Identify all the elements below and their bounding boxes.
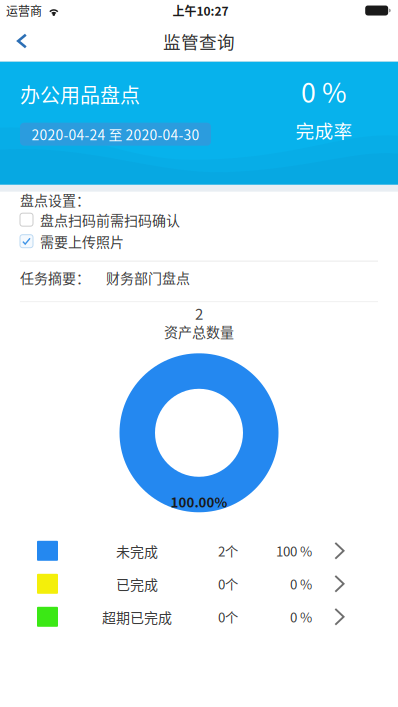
- staticText: 超期已完成: [102, 607, 172, 627]
- staticText: 盘点设置：: [20, 189, 90, 210]
- staticText: 需要上传照片: [40, 231, 124, 251]
- staticText: 未完成: [116, 541, 158, 561]
- staticText: 盘点扫码前需扫码确认: [40, 210, 180, 230]
- button[interactable]: 返回: [0, 22, 43, 60]
- button[interactable]: 已完成: [0, 567, 398, 600]
- staticText: 2: [195, 302, 203, 324]
- staticText: 2个: [218, 541, 238, 560]
- staticText: 100 %: [276, 541, 312, 560]
- staticText: 2020-04-24 至 2020-04-30: [31, 124, 199, 144]
- staticText: 运营商: [6, 2, 42, 19]
- button[interactable]: 超期已完成: [0, 600, 398, 633]
- staticText: 财务部门盘点: [106, 267, 190, 288]
- staticText: 0 %: [301, 72, 347, 111]
- staticText: 上午10:27: [172, 2, 228, 19]
- button[interactable]: 未完成: [0, 534, 398, 567]
- staticText: 办公用品盘点: [20, 80, 140, 109]
- staticText: 0个: [218, 574, 238, 593]
- staticText: 完成率: [295, 117, 352, 144]
- staticText: 0 %: [290, 607, 312, 626]
- staticText: 0 %: [290, 574, 312, 593]
- staticText: 0个: [218, 607, 238, 626]
- staticText: 已完成: [116, 574, 158, 594]
- staticText: 资产总数量: [164, 321, 234, 342]
- staticText: 监管查询: [163, 28, 235, 54]
- staticText: 任务摘要：: [20, 267, 90, 288]
- staticText: 100.00%: [170, 492, 227, 511]
